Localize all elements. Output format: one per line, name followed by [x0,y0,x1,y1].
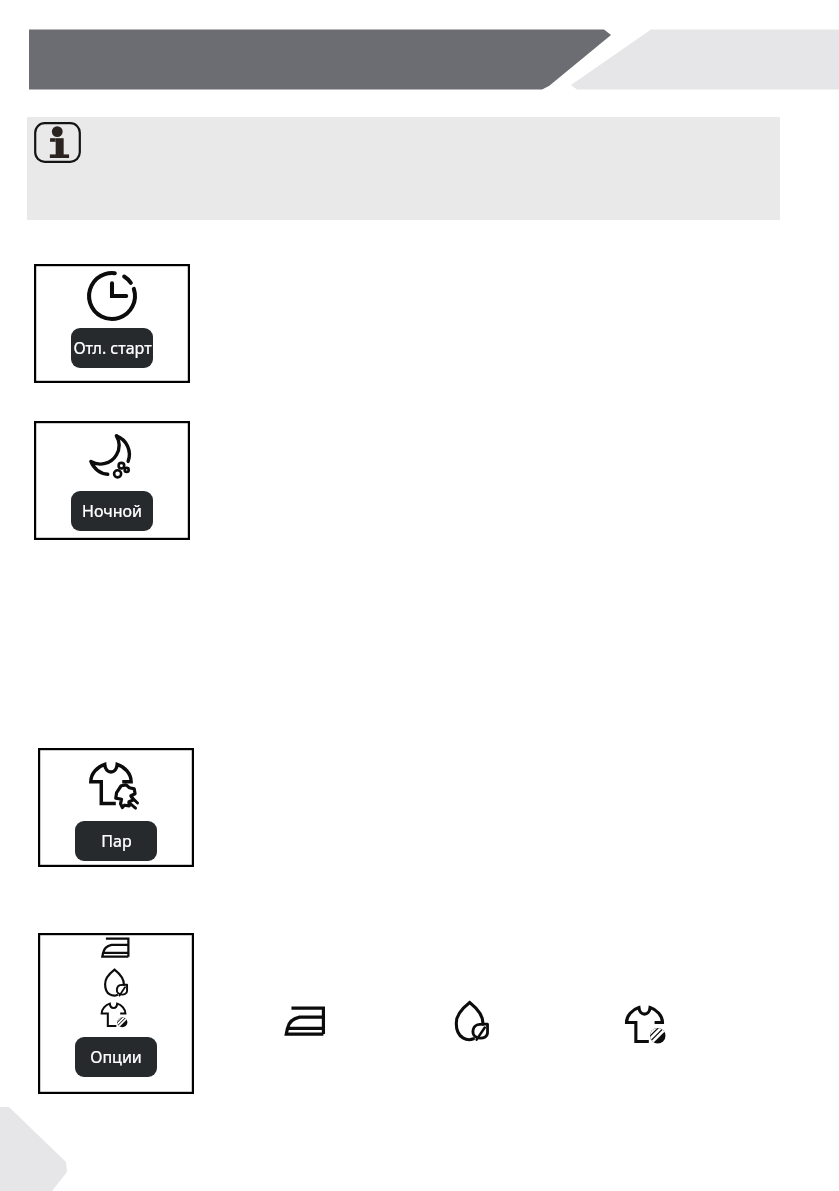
staticText: Отл. старт [73,337,152,359]
staticText: Опции [90,1046,142,1068]
button[interactable]: Экономия воды [449,996,496,1043]
staticText: Ночной [82,500,142,522]
button[interactable]: Глажение [283,996,330,1043]
button[interactable]: Удаление катышков [624,999,674,1049]
staticText: Пар [101,830,132,852]
button[interactable]: Информация [34,122,81,163]
button[interactable]: Опции [38,933,194,1094]
button[interactable]: Ночной режим [34,421,190,540]
button[interactable]: Пар [38,748,194,867]
button[interactable]: Отложенный старт [34,264,190,383]
